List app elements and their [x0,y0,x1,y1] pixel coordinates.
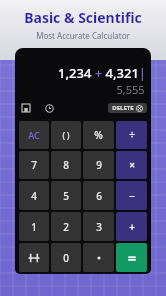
staticText: % [94,128,103,142]
button[interactable]: − [116,181,147,210]
button[interactable]: History [42,101,56,115]
staticText: ( ) [62,130,70,141]
button[interactable]: 0 [51,243,81,272]
staticText: AC [28,129,40,141]
button[interactable]: 8 [51,151,81,179]
button[interactable]: DELETE [108,103,147,113]
button[interactable] [83,243,114,272]
staticText: 0 [63,251,69,265]
button[interactable]: 2 [51,212,81,241]
staticText: 7 [31,158,37,172]
staticText: Basic & Scientific [24,8,142,27]
button[interactable]: 6 [83,181,114,210]
staticText: + [129,220,135,234]
button[interactable]: + [116,212,147,241]
staticText: ÷ [129,128,135,142]
button[interactable] [19,243,49,272]
staticText: 2 [63,220,69,234]
staticText: × [129,158,135,172]
button[interactable]: 9 [83,151,114,179]
button[interactable]: 5 [51,181,81,210]
staticText: 8 [63,158,69,172]
staticText: 1 [31,220,37,234]
button[interactable]: % [83,121,114,149]
button[interactable] [116,243,147,272]
staticText: DELETE [112,104,134,112]
staticText: 1,234 + 4,321| [58,64,146,82]
button[interactable]: × [116,151,147,179]
staticText: Most Accurate Calculator [36,30,130,41]
button[interactable]: AC [19,121,49,149]
staticText: 9 [96,158,102,172]
staticText: 6 [96,189,102,203]
button[interactable]: ( ) [51,121,81,149]
button[interactable]: Save memory [19,101,33,115]
button[interactable]: ÷ [116,121,147,149]
button[interactable]: 4 [19,181,49,210]
staticText: − [129,189,135,203]
staticText: 4 [31,189,37,203]
button[interactable]: 3 [83,212,114,241]
staticText: 5 [63,189,69,203]
staticText: 5,555 [116,82,145,97]
staticText: 3 [96,220,102,234]
button[interactable]: 7 [19,151,49,179]
button[interactable]: 1 [19,212,49,241]
